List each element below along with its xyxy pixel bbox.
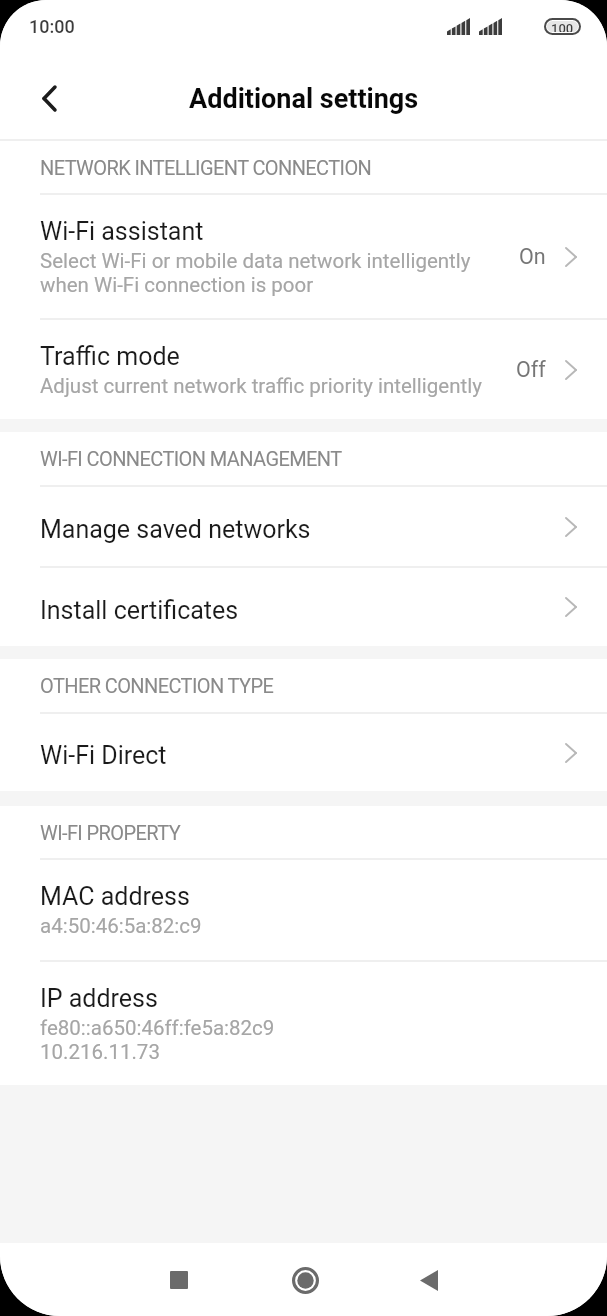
staticText: MAC address [40, 882, 190, 911]
button[interactable]: Wi-Fi assistant [0, 195, 607, 318]
staticText: Wi-Fi assistant [40, 217, 204, 246]
staticText: Off [516, 357, 546, 382]
staticText: WI-FI PROPERTY [40, 821, 181, 844]
staticText: NETWORK INTELLIGENT CONNECTION [40, 156, 372, 179]
button[interactable]: Back [393, 1244, 465, 1316]
button[interactable]: Wi-Fi Direct [0, 714, 607, 791]
staticText: Select Wi-Fi or mobile data network inte… [40, 249, 471, 297]
staticText: OTHER CONNECTION TYPE [40, 674, 274, 697]
staticText: 10:00 [29, 16, 75, 37]
button[interactable]: MAC address [0, 860, 607, 960]
staticText: 100 [551, 21, 574, 32]
button[interactable]: Manage saved networks [0, 487, 607, 566]
staticText: Adjust current network traffic priority … [40, 374, 482, 398]
staticText: Additional settings [189, 83, 419, 115]
staticText: a4:50:46:5a:82:c9 [40, 914, 202, 938]
button[interactable]: Recent apps [143, 1244, 215, 1316]
button[interactable]: Traffic mode [0, 320, 607, 419]
staticText: fe80::a650:46ff:fe5a:82c9 10.216.11.73 [40, 1016, 275, 1064]
staticText: WI-FI CONNECTION MANAGEMENT [40, 447, 342, 470]
staticText: On [519, 244, 546, 269]
button[interactable]: Install certificates [0, 568, 607, 646]
button[interactable]: Back [21, 70, 77, 126]
staticText: Manage saved networks [40, 515, 311, 544]
staticText: Wi-Fi Direct [40, 741, 167, 770]
staticText: IP address [40, 984, 158, 1013]
button[interactable]: Home [269, 1244, 341, 1316]
staticText: Install certificates [40, 596, 239, 625]
staticText: Traffic mode [40, 342, 180, 371]
button[interactable]: IP address [0, 962, 607, 1085]
